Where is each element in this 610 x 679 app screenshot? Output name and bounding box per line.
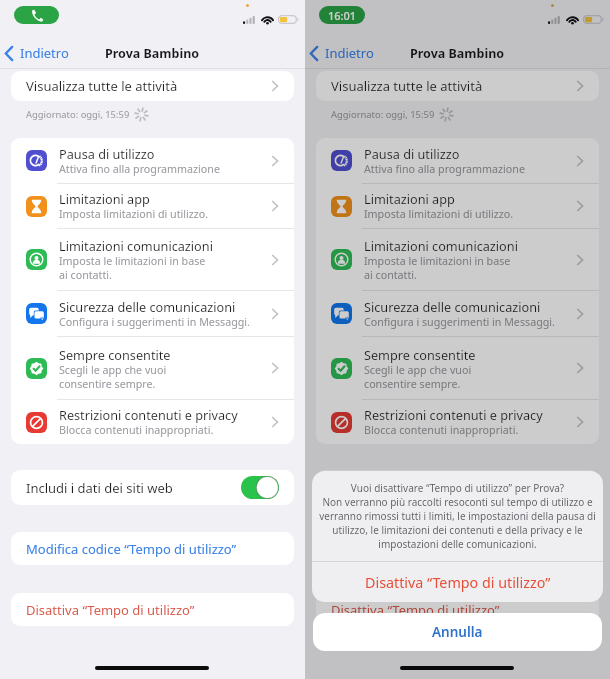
staticText: Scegli le app che vuoi consentire sempre… xyxy=(364,363,472,391)
staticText: Restrizioni contenuti e privacy xyxy=(59,406,238,423)
staticText: Attiva fino alla programmazione xyxy=(59,162,220,177)
staticText: Configura i suggerimenti in Messaggi. xyxy=(364,315,555,330)
staticText: Blocca contenuti inappropriati. xyxy=(364,423,519,438)
staticText: Imposta le limitazioni in base ai contat… xyxy=(364,254,511,282)
staticText: Prova Bambino xyxy=(410,45,505,62)
staticText: Vuoi disattivare “Tempo di utilizzo” per… xyxy=(317,481,598,551)
staticText: Limitazioni app xyxy=(364,190,455,207)
staticText: Blocca contenuti inappropriati. xyxy=(59,423,214,438)
button[interactable]: Indietro xyxy=(5,44,69,62)
button[interactable]: Limitazioni comunicazioni xyxy=(316,229,599,290)
button[interactable]: Sempre consentite xyxy=(11,337,294,399)
staticText: Disattiva “Tempo di utilizzo” xyxy=(26,601,195,619)
button[interactable]: Indietro xyxy=(310,44,374,62)
button[interactable]: Pausa di utilizzo xyxy=(316,138,599,183)
button[interactable]: Restrizioni contenuti e privacy xyxy=(11,400,294,444)
staticText: Includi i dati dei siti web xyxy=(26,479,173,497)
staticText: Includi i dati dei siti web xyxy=(331,479,478,497)
button[interactable]: Includi i dati dei siti web xyxy=(11,470,294,505)
staticText: Limitazioni comunicazioni xyxy=(59,237,213,254)
staticText: Imposta le limitazioni in base ai contat… xyxy=(59,254,206,282)
staticText: Imposta limitazioni di utilizzo. xyxy=(364,207,514,222)
staticText: Indietro xyxy=(325,44,374,62)
staticText: Pausa di utilizzo xyxy=(59,145,155,162)
button[interactable]: Includi i dati dei siti web xyxy=(546,476,584,499)
staticText: Modifica codice “Tempo di utilizzo” xyxy=(26,540,237,558)
staticText: Sicurezza delle comunicazioni xyxy=(364,298,541,315)
button[interactable]: Disattiva “Tempo di utilizzo” xyxy=(11,593,294,626)
staticText: Sicurezza delle comunicazioni xyxy=(59,298,236,315)
staticText: Disattiva “Tempo di utilizzo” xyxy=(331,601,500,619)
staticText: Visualizza tutte le attività xyxy=(331,77,483,95)
staticText: 16:01 xyxy=(328,8,357,23)
button[interactable]: Visualizza tutte le attività xyxy=(11,71,294,101)
button[interactable]: Restrizioni contenuti e privacy xyxy=(316,400,599,444)
button[interactable]: Disattiva “Tempo di utilizzo” xyxy=(316,593,599,626)
staticText: Indietro xyxy=(20,44,69,62)
staticText: Limitazioni comunicazioni xyxy=(364,237,518,254)
button[interactable]: Annulla xyxy=(313,613,602,651)
staticText: Attiva fino alla programmazione xyxy=(364,162,525,177)
staticText: Sempre consentite xyxy=(59,346,171,363)
button[interactable]: Modifica codice “Tempo di utilizzo” xyxy=(316,532,599,565)
button[interactable]: Sicurezza delle comunicazioni xyxy=(11,291,294,336)
staticText: Visualizza tutte le attività xyxy=(26,77,178,95)
staticText: Disattiva “Tempo di utilizzo” xyxy=(365,573,551,592)
button[interactable]: Sempre consentite xyxy=(316,337,599,399)
staticText: Annulla xyxy=(432,623,483,641)
button[interactable]: Includi i dati dei siti web xyxy=(241,476,279,499)
staticText: Prova Bambino xyxy=(105,45,200,62)
button[interactable]: Visualizza tutte le attività xyxy=(316,71,599,101)
button[interactable]: Limitazioni comunicazioni xyxy=(11,229,294,290)
button[interactable]: Modifica codice “Tempo di utilizzo” xyxy=(11,532,294,565)
button[interactable]: Pausa di utilizzo xyxy=(11,138,294,183)
staticText: Modifica codice “Tempo di utilizzo” xyxy=(331,540,542,558)
button[interactable]: Limitazioni app xyxy=(11,184,294,228)
staticText: Pausa di utilizzo xyxy=(364,145,460,162)
staticText: Configura i suggerimenti in Messaggi. xyxy=(59,315,250,330)
staticText: Sempre consentite xyxy=(364,346,476,363)
button[interactable]: Sicurezza delle comunicazioni xyxy=(316,291,599,336)
staticText: Restrizioni contenuti e privacy xyxy=(364,406,543,423)
button[interactable]: Limitazioni app xyxy=(316,184,599,228)
staticText: Aggiornato: oggi, 15:59 xyxy=(26,108,130,121)
button[interactable]: Disattiva “Tempo di utilizzo” xyxy=(312,562,603,602)
staticText: Scegli le app che vuoi consentire sempre… xyxy=(59,363,167,391)
button[interactable]: Includi i dati dei siti web xyxy=(316,470,599,505)
staticText: Aggiornato: oggi, 15:59 xyxy=(331,108,435,121)
staticText: Limitazioni app xyxy=(59,190,150,207)
staticText: Imposta limitazioni di utilizzo. xyxy=(59,207,209,222)
